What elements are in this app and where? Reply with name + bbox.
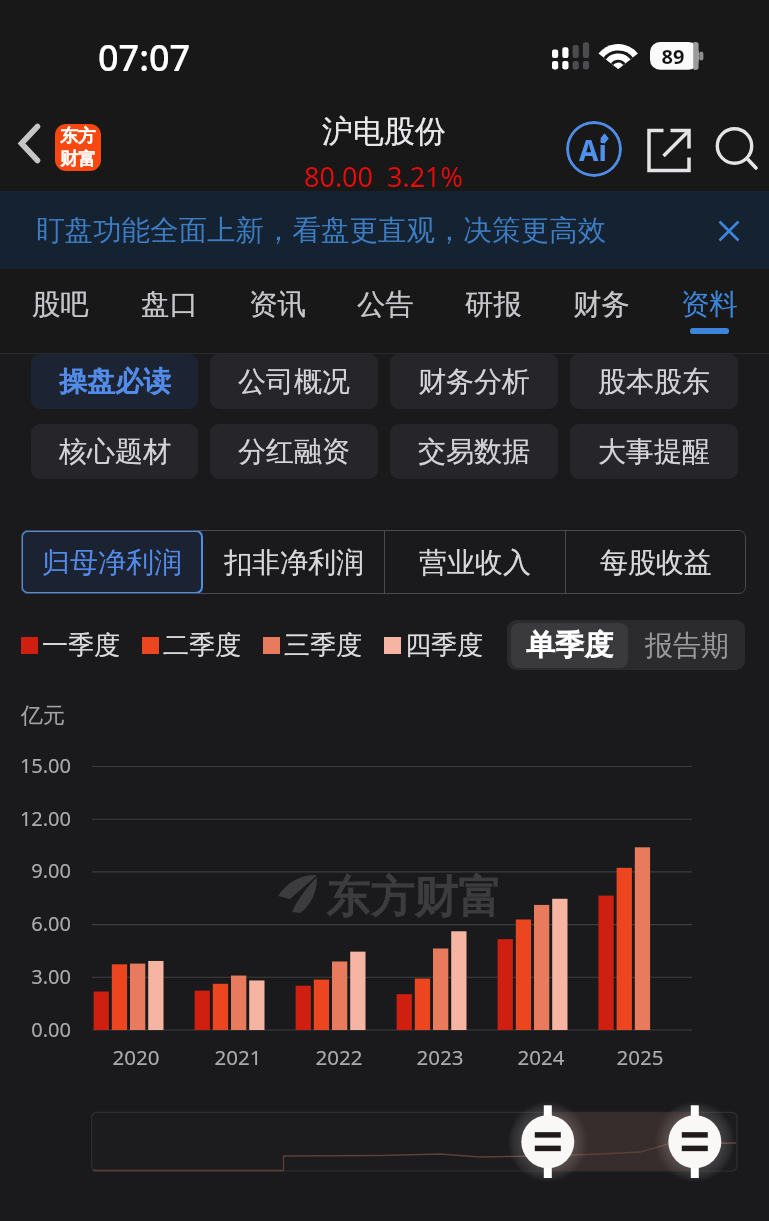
button[interactable]: 每股收益	[565, 530, 746, 594]
staticText: 操盘必读	[59, 364, 171, 399]
staticText: 12.00	[5, 805, 71, 832]
staticText: 交易数据	[418, 434, 530, 469]
staticText: 15.00	[5, 752, 71, 779]
button[interactable]: Range end handle	[668, 1115, 722, 1169]
staticText: 9.00	[5, 857, 71, 884]
button[interactable]: 盘口	[115, 269, 223, 354]
staticText: 资料	[681, 287, 738, 323]
button[interactable]: 财务分析	[390, 354, 558, 409]
staticText: 股吧	[32, 287, 89, 323]
button[interactable]: 盯盘功能全面上新，看盘更直观，决策更高效	[0, 191, 769, 269]
staticText: 0.00	[5, 1016, 71, 1043]
staticText: 07:07	[98, 33, 191, 82]
staticText: 2020	[91, 1043, 181, 1071]
button[interactable]: 大事提醒	[570, 424, 738, 479]
staticText: 盯盘功能全面上新，看盘更直观，决策更高效	[36, 213, 606, 249]
staticText: 一季度	[42, 629, 120, 662]
staticText: 股本股东	[598, 364, 710, 399]
staticText: 盘口	[141, 287, 198, 323]
button[interactable]: AI assistant	[566, 121, 622, 177]
staticText: 每股收益	[600, 545, 712, 580]
button[interactable]: 操盘必读	[31, 354, 198, 409]
staticText: 2025	[595, 1043, 685, 1071]
staticText: 财务	[573, 287, 630, 323]
button[interactable]: East Money logo	[55, 124, 101, 171]
button[interactable]: 财务	[547, 269, 655, 354]
staticText: 大事提醒	[598, 434, 710, 469]
staticText: 亿元	[21, 702, 65, 730]
staticText: 单季度	[526, 627, 613, 664]
button[interactable]: Search	[706, 118, 764, 176]
button[interactable]: 资讯	[223, 269, 331, 354]
button[interactable]: 交易数据	[390, 424, 558, 479]
staticText: 财务分析	[418, 364, 530, 399]
button[interactable]: 资料	[655, 269, 763, 354]
staticText: 财富	[60, 148, 96, 171]
staticText: 2022	[294, 1043, 384, 1071]
staticText: 营业收入	[419, 545, 531, 580]
staticText: 东方财富	[326, 870, 502, 925]
button[interactable]: 单季度	[511, 623, 628, 668]
staticText: 分红融资	[238, 434, 350, 469]
staticText: 3.00	[5, 963, 71, 990]
staticText: 四季度	[405, 629, 483, 662]
staticText: 6.00	[5, 910, 71, 937]
staticText: 研报	[465, 287, 522, 323]
button[interactable]: Back	[6, 119, 54, 167]
staticText: 报告期	[645, 628, 729, 663]
button[interactable]: 研报	[439, 269, 547, 354]
staticText: 核心题材	[59, 434, 171, 469]
button[interactable]: 股吧	[6, 269, 115, 354]
staticText: 公司概况	[238, 364, 350, 399]
staticText: Ai	[579, 131, 607, 169]
button[interactable]: 二季度	[142, 629, 241, 662]
staticText: 2023	[395, 1043, 485, 1071]
button[interactable]: Close banner	[709, 211, 749, 251]
staticText: 3.21%	[387, 158, 464, 195]
button[interactable]: 扣非净利润	[203, 530, 384, 594]
staticText: 归母净利润	[42, 545, 182, 580]
staticText: 资讯	[249, 287, 306, 323]
button[interactable]: 分红融资	[210, 424, 378, 479]
button[interactable]: 归母净利润	[21, 530, 203, 594]
staticText: 沪电股份	[322, 112, 446, 151]
button[interactable]: Share	[640, 120, 698, 178]
button[interactable]: 公告	[331, 269, 439, 354]
button[interactable]: 报告期	[628, 620, 745, 670]
staticText: 89	[650, 43, 696, 70]
staticText: 2024	[496, 1043, 586, 1071]
button[interactable]: 三季度	[263, 629, 362, 662]
button[interactable]: 股本股东	[570, 354, 738, 409]
staticText: 三季度	[284, 629, 362, 662]
button[interactable]: 营业收入	[384, 530, 565, 594]
button[interactable]: 公司概况	[210, 354, 378, 409]
staticText: 东方	[60, 125, 96, 148]
staticText: 80.00	[304, 158, 374, 195]
button[interactable]: Range start handle	[521, 1115, 575, 1169]
staticText: 公告	[357, 287, 414, 323]
button[interactable]: 一季度	[21, 629, 120, 662]
staticText: 二季度	[163, 629, 241, 662]
staticText: 2021	[193, 1043, 283, 1071]
button[interactable]: 核心题材	[31, 424, 198, 479]
staticText: 扣非净利润	[224, 545, 364, 580]
button[interactable]: 四季度	[384, 629, 483, 662]
